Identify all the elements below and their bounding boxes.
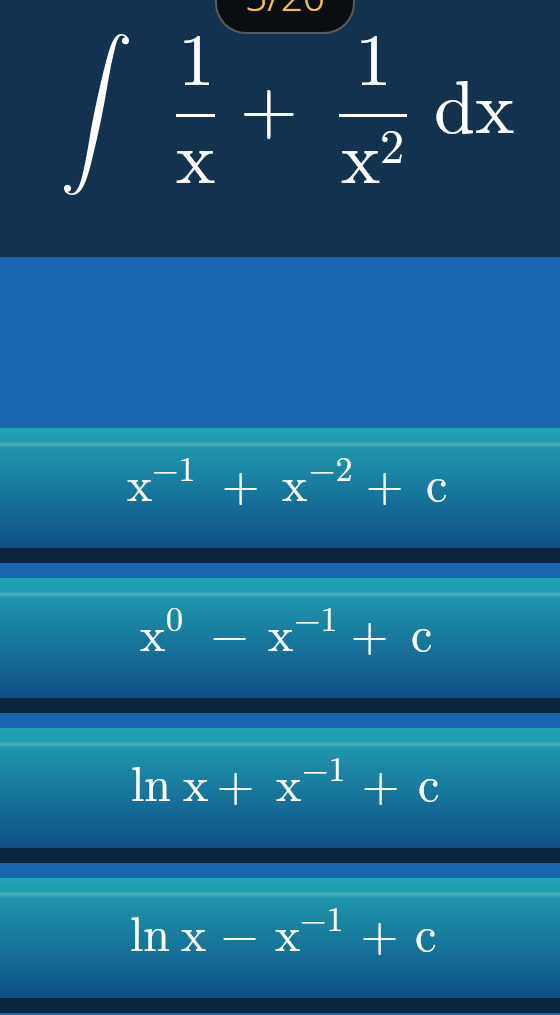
- button[interactable]: x: [0, 428, 560, 548]
- staticText: 1: [178, 2, 215, 107]
- staticText: x: [268, 597, 294, 665]
- staticText: 1: [355, 2, 392, 107]
- staticText: c: [426, 447, 448, 515]
- staticText: x: [176, 100, 216, 205]
- staticText: ln: [131, 747, 172, 815]
- staticText: +: [222, 447, 260, 515]
- staticText: −1: [300, 893, 344, 941]
- staticText: −: [211, 597, 249, 665]
- staticText: −1: [302, 743, 346, 791]
- staticText: −2: [309, 443, 353, 491]
- staticText: 0: [166, 593, 183, 641]
- staticText: c: [415, 897, 437, 965]
- staticText: x: [127, 447, 153, 515]
- staticText: ln: [130, 897, 171, 965]
- staticText: −1: [152, 443, 196, 491]
- other: integral: [64, 34, 129, 195]
- staticText: +: [366, 447, 404, 515]
- staticText: +: [351, 597, 389, 665]
- staticText: −1: [294, 593, 338, 641]
- button[interactable]: Question 5 of 20: [215, 0, 355, 34]
- staticText: x: [140, 597, 166, 665]
- staticText: +: [361, 897, 399, 965]
- staticText: x: [282, 447, 308, 515]
- staticText: x: [275, 897, 301, 965]
- staticText: dx: [434, 50, 515, 155]
- staticText: +: [362, 747, 400, 815]
- button[interactable]: x: [0, 578, 560, 698]
- button[interactable]: ln: [0, 728, 560, 848]
- staticText: +: [217, 747, 255, 815]
- button[interactable]: ln: [0, 878, 560, 998]
- staticText: x2: [341, 100, 405, 205]
- staticText: x: [183, 747, 209, 815]
- staticText: c: [418, 747, 440, 815]
- staticText: −: [221, 897, 259, 965]
- staticText: +: [240, 50, 298, 155]
- staticText: x: [181, 897, 207, 965]
- staticText: c: [411, 597, 433, 665]
- staticText: x: [276, 747, 302, 815]
- staticText: 5/20: [245, 0, 326, 22]
